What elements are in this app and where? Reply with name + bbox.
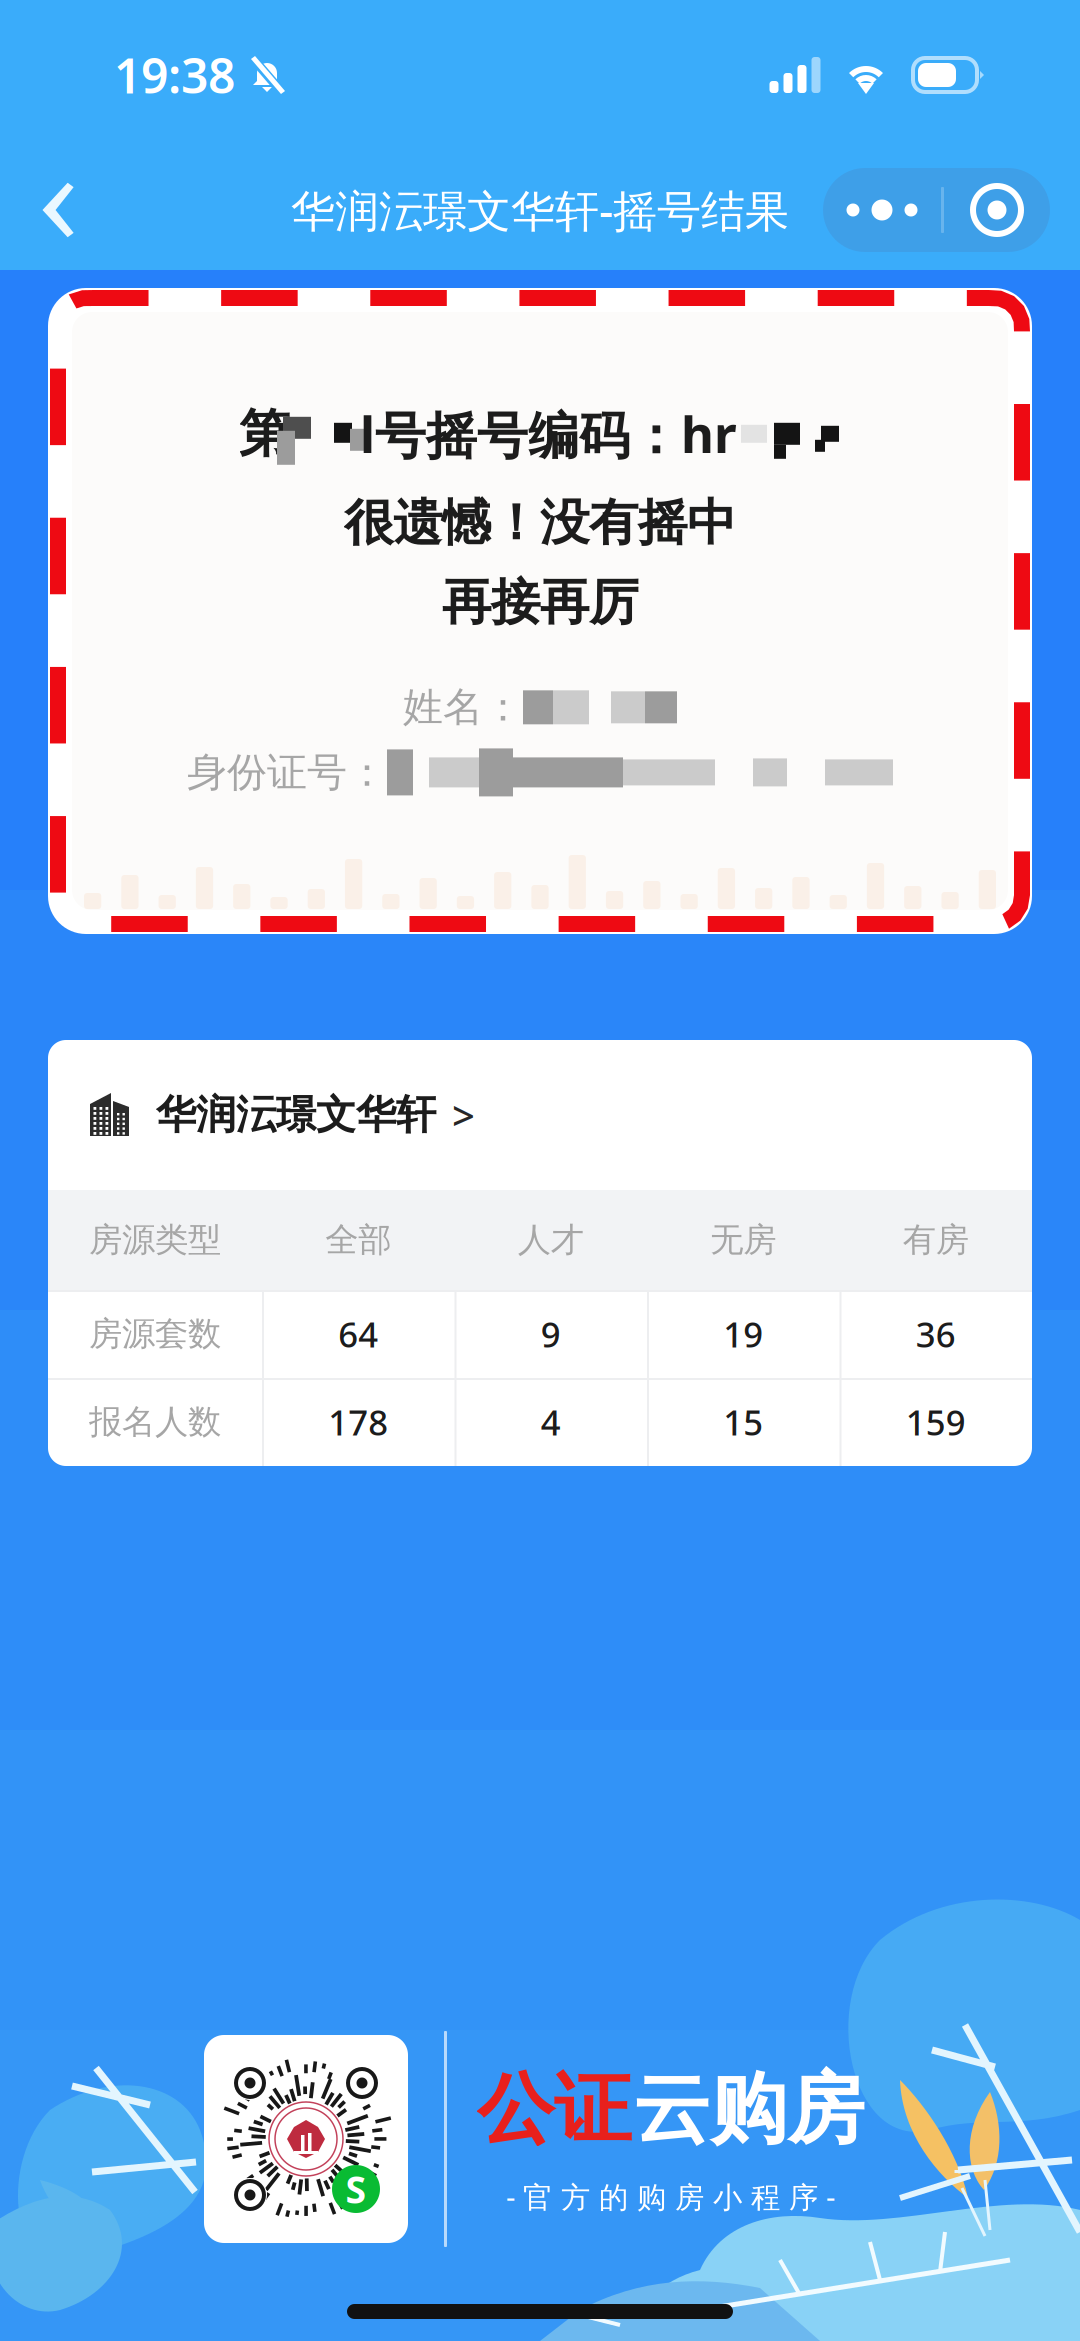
button[interactable]: Scan QR code to open the mini program xyxy=(204,2035,408,2243)
staticText: 无房 xyxy=(710,1219,776,1260)
staticText: 云购房 xyxy=(633,2062,864,2157)
staticText: 15 xyxy=(723,1399,763,1445)
staticText: 178 xyxy=(328,1399,388,1445)
staticText: 公证 xyxy=(477,2062,631,2157)
staticText: S xyxy=(345,2164,366,2214)
staticText: 华润沄璟文华轩-摇号结果 xyxy=(291,181,789,239)
staticText: 房源类型 xyxy=(89,1219,221,1260)
staticText: 19 xyxy=(723,1311,763,1357)
staticText: 4 xyxy=(541,1399,561,1445)
staticText: 身份证号： xyxy=(187,748,387,797)
staticText: 人才 xyxy=(518,1219,584,1260)
staticText: 姓名： xyxy=(403,683,523,732)
button[interactable]: 华润沄璟文华轩 xyxy=(48,1040,1032,1190)
staticText: 64 xyxy=(338,1311,378,1357)
staticText: > xyxy=(452,1088,475,1141)
staticText: 159 xyxy=(906,1399,966,1445)
staticText: 再接再厉 xyxy=(442,572,638,633)
staticText: - 官 方 的 购 房 小 程 序 - xyxy=(506,2177,835,2216)
staticText: 19:38 xyxy=(114,43,235,107)
staticText: 第 xyxy=(239,403,290,465)
staticText: 房源套数 xyxy=(89,1313,221,1354)
button[interactable]: Close mini program xyxy=(944,168,1050,252)
staticText: 华润沄璟文华轩 xyxy=(156,1090,436,1139)
button[interactable]: Back xyxy=(0,157,110,263)
staticText: l号摇号编码：hr xyxy=(360,400,737,467)
staticText: 全部 xyxy=(325,1219,391,1260)
staticText: 36 xyxy=(916,1311,956,1357)
staticText: 9 xyxy=(541,1311,561,1357)
staticText: 有房 xyxy=(903,1219,969,1260)
staticText: 报名人数 xyxy=(89,1401,221,1442)
button[interactable]: More options xyxy=(823,168,941,252)
staticText: 很遗憾！没有摇中 xyxy=(344,492,736,553)
